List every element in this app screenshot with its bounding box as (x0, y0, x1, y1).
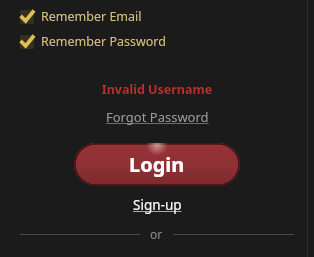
staticText: or (150, 226, 163, 242)
staticText: Sign-up (133, 196, 182, 214)
button[interactable]: Remember Password (18, 31, 168, 52)
staticText: Forgot Password (106, 108, 209, 126)
staticText: Login (129, 151, 185, 178)
button[interactable]: Remember Email (18, 6, 144, 27)
button[interactable]: Forgot Password (100, 106, 215, 128)
button[interactable]: Login (74, 143, 240, 186)
staticText: Remember Email (41, 8, 142, 25)
staticText: Invalid Username (0, 81, 314, 98)
staticText: Remember Password (41, 33, 166, 50)
button[interactable]: Sign-up (127, 194, 188, 216)
